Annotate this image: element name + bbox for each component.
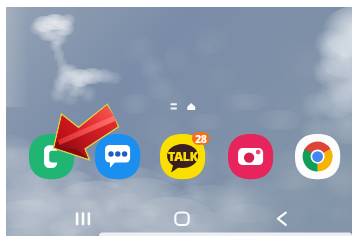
button[interactable]: KakaoTalk [160, 134, 205, 179]
button[interactable]: Home screen [184, 100, 198, 114]
staticText: 28 [192, 132, 210, 145]
button[interactable]: Home [170, 206, 194, 232]
button[interactable]: Back [270, 206, 294, 232]
button[interactable]: Phone [29, 134, 74, 179]
button[interactable]: Recent apps [70, 206, 96, 232]
staticText: TALK [163, 148, 203, 164]
button[interactable]: Camera [228, 134, 273, 179]
button[interactable]: Messages [95, 134, 140, 179]
button[interactable]: Chrome [295, 134, 340, 179]
button[interactable]: App list [168, 100, 180, 114]
